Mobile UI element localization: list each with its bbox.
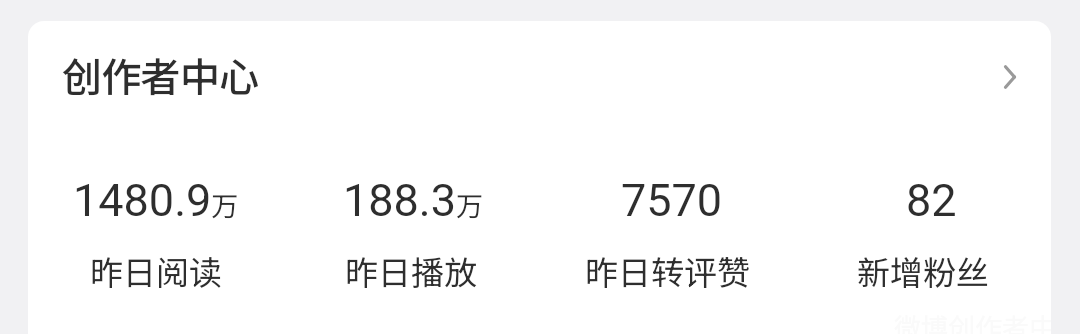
staticText: 1480.9万 <box>73 174 239 227</box>
staticText: 昨日播放 <box>345 247 477 295</box>
button[interactable]: 188.3万 <box>283 174 539 295</box>
staticText: 昨日阅读 <box>90 247 222 295</box>
other: 进入创作者中心 <box>988 53 1032 97</box>
staticText: 昨日转评赞 <box>585 247 750 295</box>
button[interactable]: 7570 <box>539 174 795 295</box>
staticText: 82 <box>906 174 957 227</box>
staticText: 创作者中心 <box>62 46 259 104</box>
staticText: 7570 <box>621 174 723 227</box>
staticText: 新增粉丝 <box>857 247 989 295</box>
button[interactable]: 82 <box>795 174 1051 295</box>
staticText: 188.3万 <box>343 174 484 227</box>
button[interactable]: 1480.9万 <box>28 174 283 295</box>
button[interactable]: 创作者中心 <box>28 44 1051 106</box>
